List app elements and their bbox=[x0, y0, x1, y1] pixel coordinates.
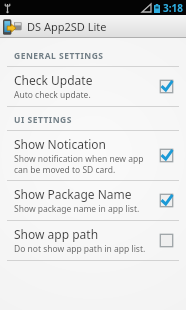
staticText: UI SETTINGS bbox=[14, 114, 72, 126]
button[interactable]: Disabled bbox=[159, 233, 174, 248]
button[interactable]: Show Notication bbox=[0, 131, 186, 180]
staticText: Show Package Name bbox=[14, 186, 132, 202]
button[interactable]: Show Package Name bbox=[0, 181, 186, 220]
button[interactable]: Enabled bbox=[159, 148, 174, 163]
other: USB connected bbox=[4, 3, 11, 13]
button[interactable]: Enabled bbox=[159, 79, 174, 94]
button[interactable]: Show app path bbox=[0, 221, 186, 260]
button[interactable]: Check Update bbox=[0, 67, 186, 106]
staticText: DS App2SD Lite bbox=[27, 19, 107, 34]
staticText: Do not show app path in app list. bbox=[14, 243, 146, 255]
staticText: Show app path bbox=[14, 226, 99, 242]
staticText: Show Notication bbox=[14, 136, 106, 152]
staticText: 3:18 bbox=[163, 1, 183, 15]
staticText: Show notification when new app can be mo… bbox=[14, 153, 144, 175]
staticText: Check Update bbox=[14, 72, 93, 88]
button[interactable]: Enabled bbox=[159, 193, 174, 208]
staticText: Auto check update. bbox=[14, 89, 91, 101]
staticText: Show package name in app list. bbox=[14, 203, 140, 215]
staticText: GENERAL SETTINGS bbox=[14, 50, 104, 62]
